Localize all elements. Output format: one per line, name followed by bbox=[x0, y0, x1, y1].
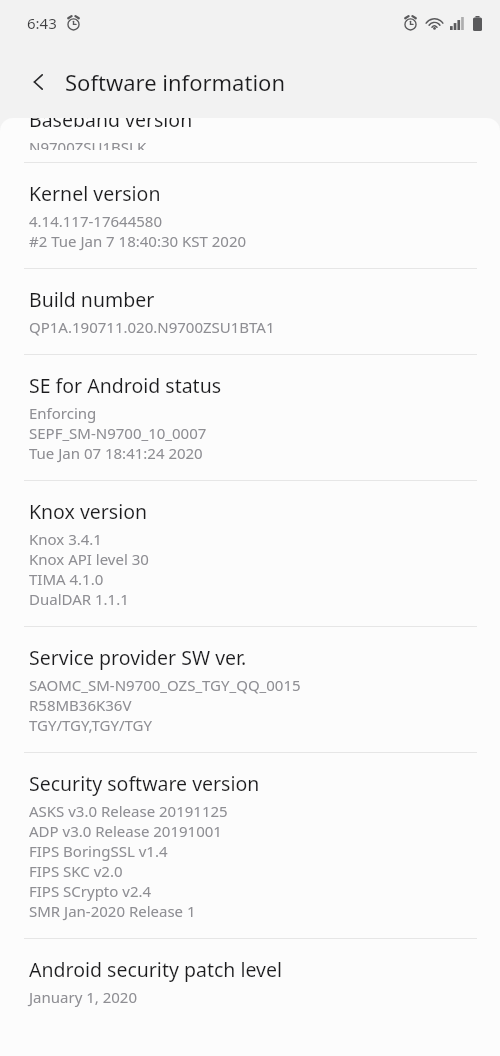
button[interactable]: Knox version bbox=[0, 481, 500, 626]
staticText: N9700ZSU1BSLK bbox=[29, 137, 147, 150]
staticText: Software information bbox=[65, 67, 285, 97]
button[interactable]: Back bbox=[16, 59, 62, 105]
staticText: SMR Jan-2020 Release 1 bbox=[29, 901, 196, 921]
staticText: TGY/TGY,TGY/TGY bbox=[29, 715, 153, 735]
staticText: 6:43 bbox=[27, 13, 57, 33]
staticText: TIMA 4.1.0 bbox=[29, 569, 104, 589]
staticText: Knox API level 30 bbox=[29, 549, 149, 569]
staticText: Kernel version bbox=[29, 180, 161, 207]
button[interactable]: SE for Android status bbox=[0, 355, 500, 480]
button[interactable]: Security software version bbox=[0, 753, 500, 938]
staticText: FIPS BoringSSL v1.4 bbox=[29, 841, 168, 861]
staticText: 4.14.117-17644580 bbox=[29, 211, 162, 231]
staticText: Security software version bbox=[29, 770, 260, 797]
staticText: ASKS v3.0 Release 20191125 bbox=[29, 801, 228, 821]
staticText: QP1A.190711.020.N9700ZSU1BTA1 bbox=[29, 317, 275, 337]
button[interactable]: Android security patch level bbox=[0, 939, 500, 1024]
staticText: FIPS SCrypto v2.4 bbox=[29, 881, 152, 901]
staticText: SAOMC_SM-N9700_OZS_TGY_QQ_0015 bbox=[29, 675, 301, 695]
staticText: ADP v3.0 Release 20191001 bbox=[29, 821, 222, 841]
button[interactable]: Build number bbox=[0, 269, 500, 354]
staticText: Baseband version bbox=[29, 118, 193, 133]
staticText: DualDAR 1.1.1 bbox=[29, 589, 129, 609]
staticText: January 1, 2020 bbox=[29, 987, 138, 1007]
staticText: Android security patch level bbox=[29, 956, 282, 983]
staticText: SE for Android status bbox=[29, 372, 222, 399]
button[interactable]: Kernel version bbox=[0, 163, 500, 268]
staticText: Service provider SW ver. bbox=[29, 644, 247, 671]
staticText: Knox version bbox=[29, 498, 148, 525]
staticText: Tue Jan 07 18:41:24 2020 bbox=[29, 443, 203, 463]
staticText: Knox 3.4.1 bbox=[29, 529, 102, 549]
button[interactable]: Baseband version bbox=[0, 118, 500, 162]
staticText: #2 Tue Jan 7 18:40:30 KST 2020 bbox=[29, 231, 247, 251]
staticText: SEPF_SM-N9700_10_0007 bbox=[29, 423, 207, 443]
button[interactable]: Service provider SW ver. bbox=[0, 627, 500, 752]
staticText: R58MB36K36V bbox=[29, 695, 132, 715]
staticText: Enforcing bbox=[29, 403, 97, 423]
staticText: FIPS SKC v2.0 bbox=[29, 861, 123, 881]
staticText: Build number bbox=[29, 286, 155, 313]
